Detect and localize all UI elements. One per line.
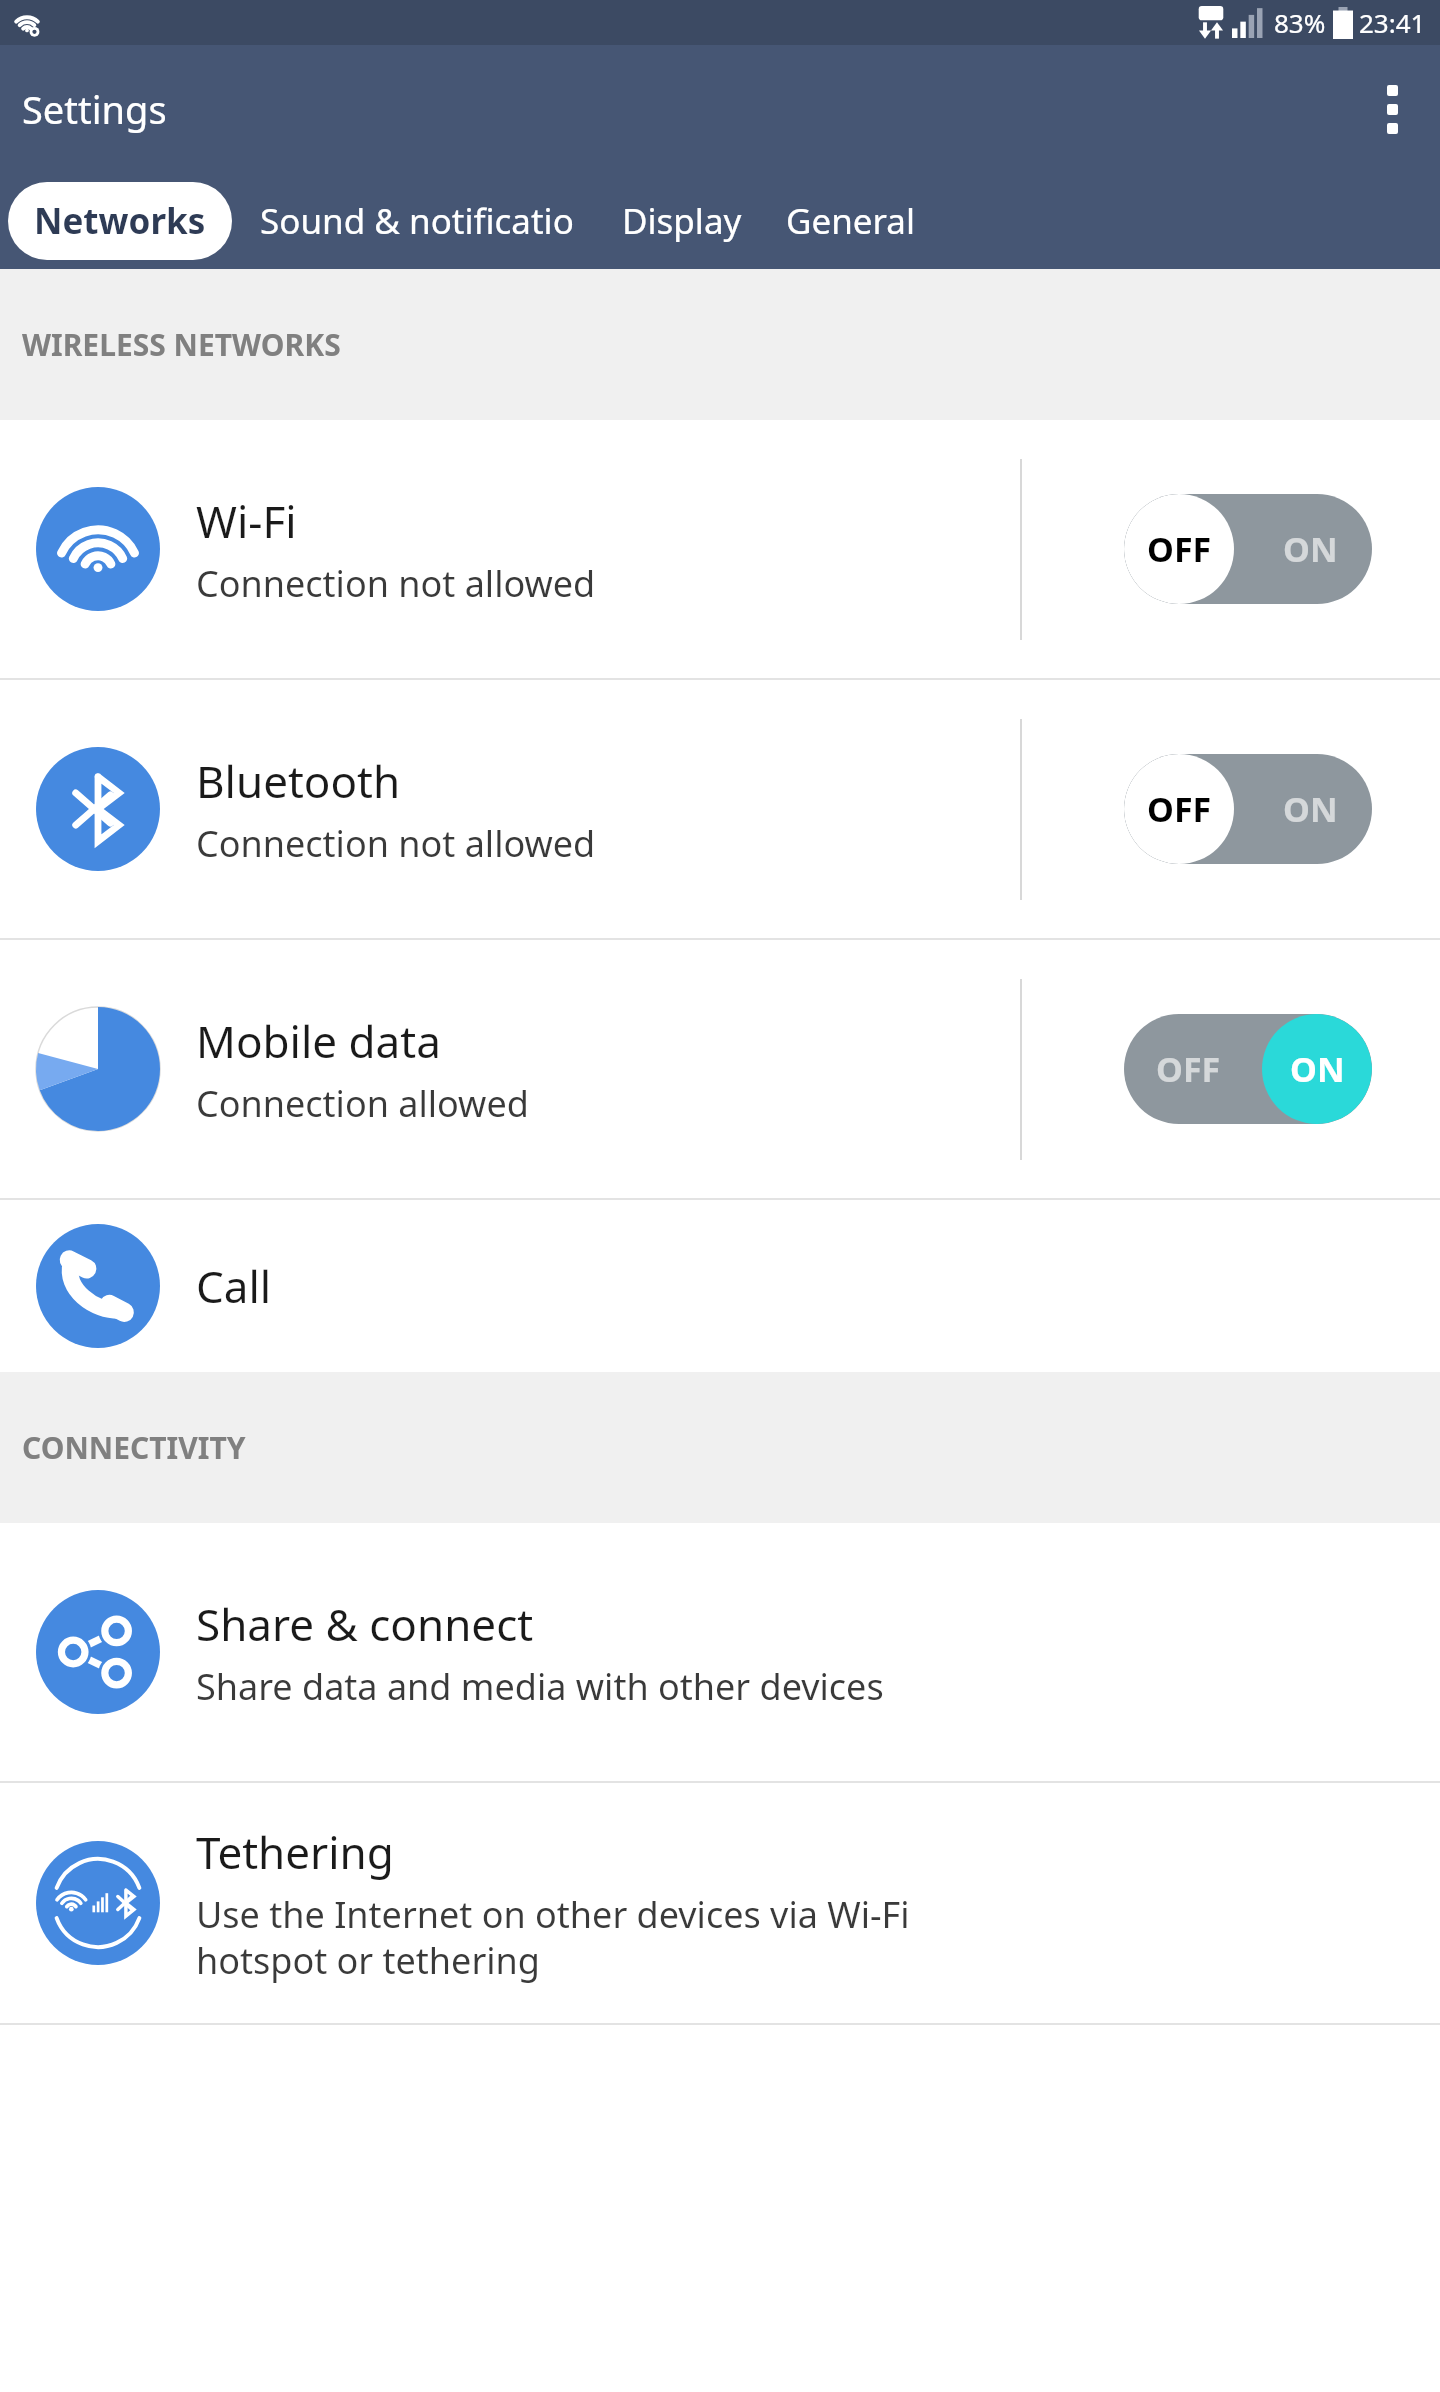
staticText: ON: [1290, 1046, 1345, 1092]
button[interactable]: Mobile data: [0, 940, 1440, 1198]
staticText: Sound & notificatio: [260, 197, 574, 245]
button[interactable]: Turn on: [1124, 754, 1372, 864]
staticText: ON: [1283, 786, 1338, 832]
staticText: ON: [1283, 526, 1338, 572]
staticText: 23:41: [1359, 5, 1426, 40]
staticText: CONNECTIVITY: [22, 1427, 246, 1468]
staticText: Bluetooth: [196, 751, 401, 811]
staticText: Connection not allowed: [196, 559, 596, 608]
staticText: Share & connect: [196, 1594, 534, 1654]
button[interactable]: Bluetooth: [0, 680, 1440, 938]
staticText: Mobile data: [196, 1011, 441, 1071]
button[interactable]: Networks: [8, 182, 232, 260]
button[interactable]: Tethering: [0, 1783, 1440, 2023]
staticText: Settings: [22, 83, 167, 135]
button[interactable]: General: [782, 197, 920, 245]
staticText: OFF: [1156, 1046, 1221, 1092]
staticText: Networks: [34, 197, 206, 245]
staticText: WIRELESS NETWORKS: [22, 324, 341, 365]
staticText: Display: [622, 197, 742, 245]
button[interactable]: Display: [618, 197, 746, 245]
button[interactable]: Share & connect: [0, 1523, 1440, 1781]
staticText: Connection allowed: [196, 1079, 529, 1128]
staticText: OFF: [1147, 526, 1212, 572]
button[interactable]: Turn on: [1124, 494, 1372, 604]
staticText: Share data and media with other devices: [196, 1662, 884, 1711]
staticText: Connection not allowed: [196, 819, 596, 868]
staticText: Wi-Fi: [196, 491, 297, 551]
button[interactable]: Wi-Fi: [0, 420, 1440, 678]
staticText: Tethering: [196, 1822, 394, 1882]
staticText: 83%: [1274, 5, 1326, 40]
button[interactable]: Turn off: [1124, 1014, 1372, 1124]
staticText: OFF: [1147, 786, 1212, 832]
staticText: General: [786, 197, 916, 245]
button[interactable]: Call: [0, 1200, 1440, 1372]
staticText: Use the Internet on other devices via Wi…: [196, 1890, 910, 1985]
staticText: Call: [196, 1256, 272, 1316]
button[interactable]: More options: [1344, 61, 1440, 157]
button[interactable]: Sound & notificatio: [258, 197, 602, 245]
